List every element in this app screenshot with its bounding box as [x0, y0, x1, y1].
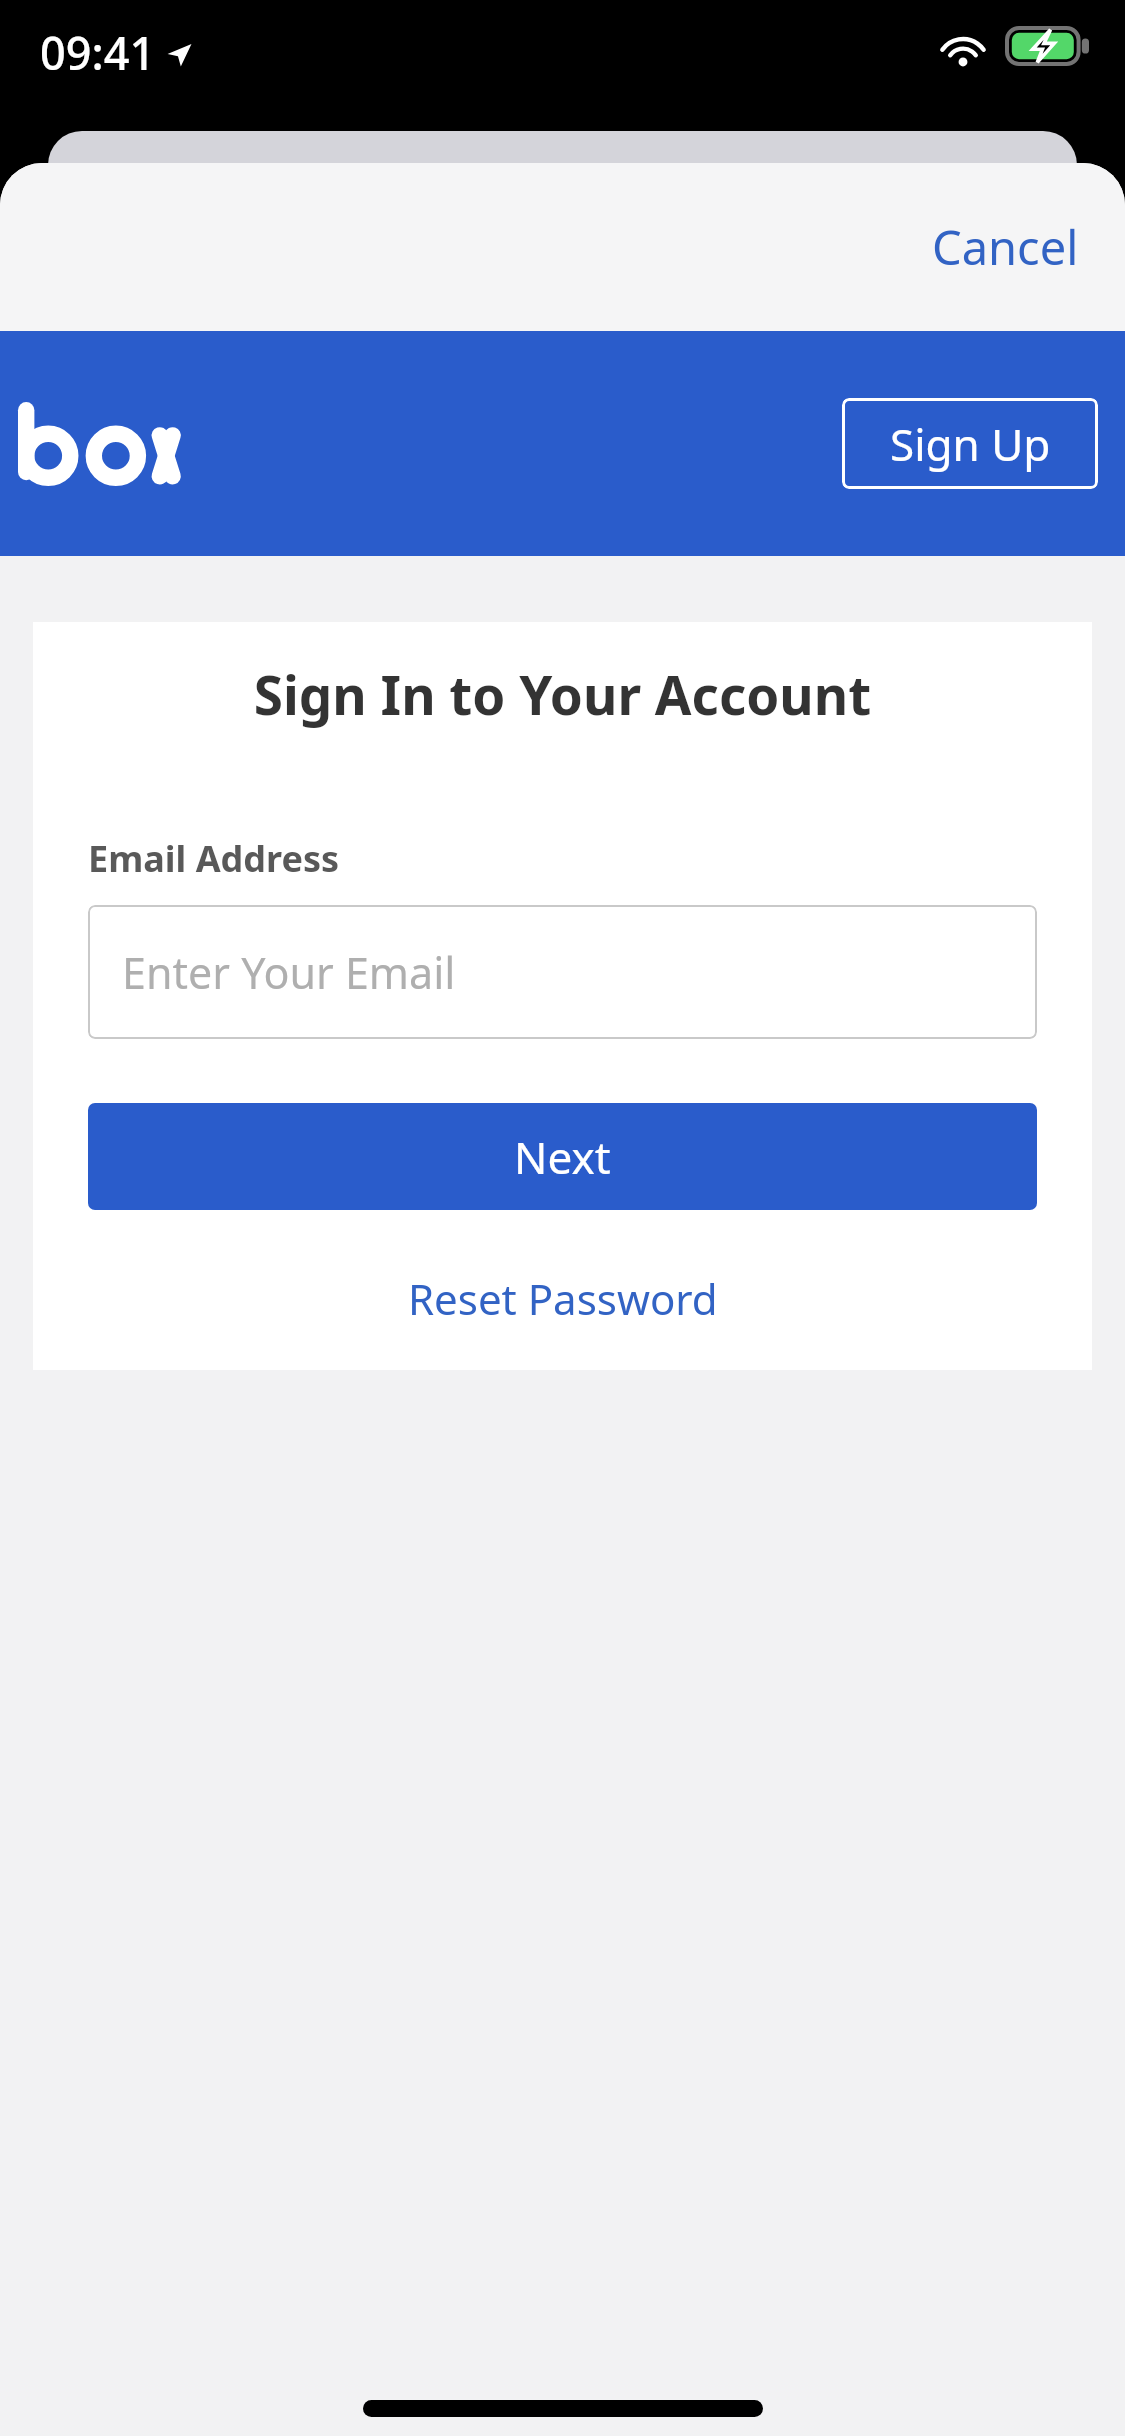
staticText: Next [514, 1127, 611, 1187]
staticText: Sign Up [890, 414, 1051, 474]
button[interactable]: Enter Your Email [88, 905, 1037, 1039]
button[interactable]: Next [88, 1103, 1037, 1210]
staticText: Sign In to Your Account [33, 658, 1092, 730]
staticText: 09:41 [40, 22, 156, 83]
button[interactable]: Cancel [916, 201, 1095, 293]
button[interactable]: Sign Up [842, 398, 1098, 489]
staticText: Cancel [932, 215, 1079, 279]
button[interactable]: Reset Password [388, 1262, 738, 1335]
staticText: Email Address [88, 834, 340, 883]
staticText: Reset Password [408, 1270, 718, 1327]
staticText: Enter Your Email [122, 943, 456, 1002]
other: Box [18, 402, 180, 486]
